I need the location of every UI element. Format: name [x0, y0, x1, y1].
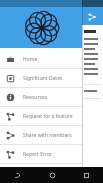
button[interactable]: Report Error [0, 145, 82, 163]
button[interactable]: Request for a feature [0, 107, 82, 125]
staticText: Share with members [23, 132, 72, 139]
staticText: Request for a feature [23, 113, 73, 120]
button[interactable]: Share with members [0, 126, 82, 144]
button[interactable]: Significant Dates [0, 69, 82, 87]
staticText: Significant Dates [23, 75, 63, 82]
staticText: Home [23, 56, 38, 63]
staticText: Resources [23, 94, 48, 101]
button[interactable]: Share [85, 10, 98, 23]
button[interactable]: Back [0, 167, 35, 183]
button[interactable]: Resources [0, 88, 82, 106]
button[interactable]: Recents [69, 167, 103, 183]
button[interactable]: Home [0, 50, 82, 68]
staticText: Report Error [23, 151, 53, 158]
button[interactable]: Home [35, 167, 69, 183]
